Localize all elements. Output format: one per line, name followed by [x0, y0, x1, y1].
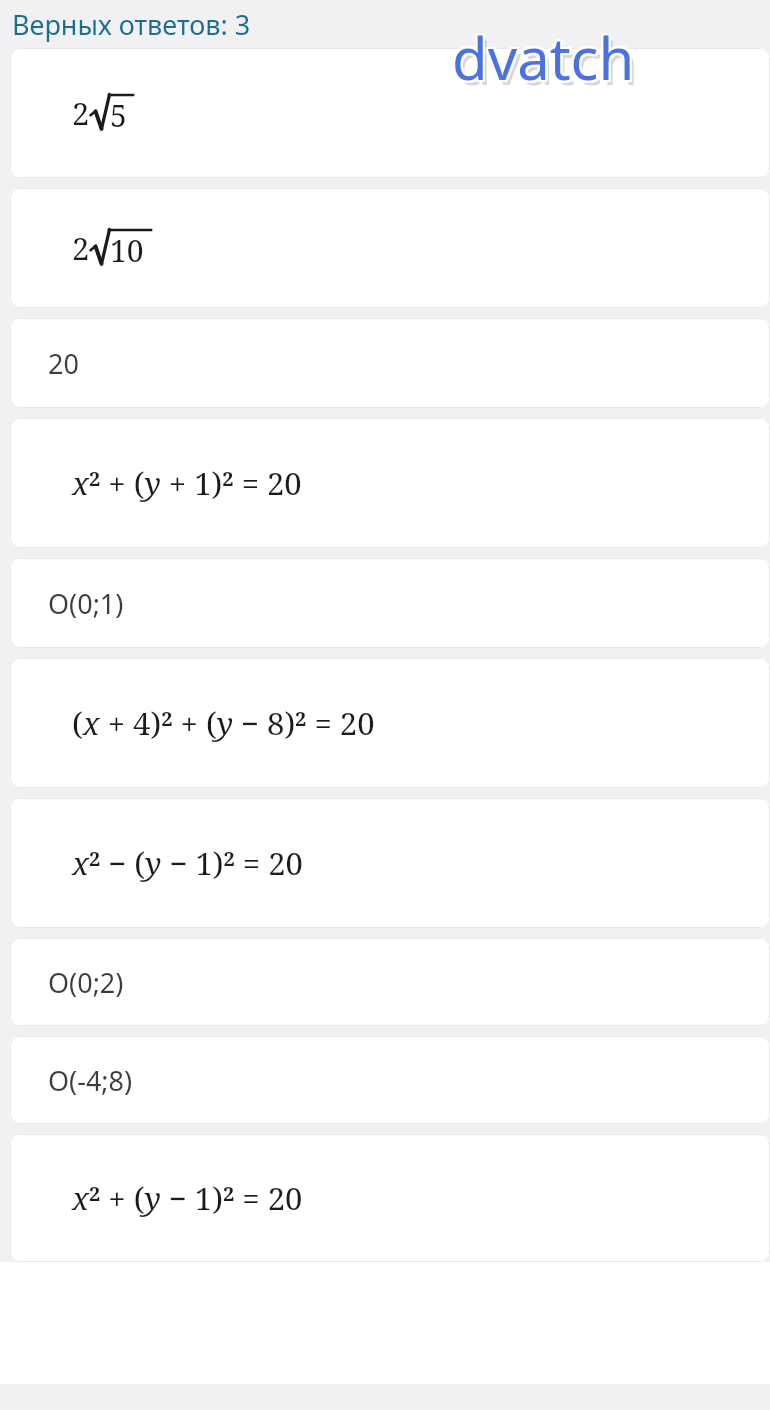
button[interactable]: x2 − (y − 1)2 = 20 [10, 798, 770, 928]
staticText: 20 [48, 345, 79, 382]
staticText: dvatch [450, 18, 633, 97]
staticText: 2 [72, 227, 90, 269]
staticText: Верных ответов: 3 [12, 6, 251, 43]
staticText: 5 [110, 95, 127, 135]
staticText: dvatch [452, 18, 635, 97]
staticText: O(0;2) [48, 964, 124, 1001]
staticText: dvatch [454, 20, 637, 99]
staticText: O(0;1) [48, 585, 124, 622]
staticText: dvatch [454, 18, 637, 97]
staticText: 10 [110, 230, 144, 270]
button[interactable]: x2 + (y − 1)2 = 20 [10, 1134, 770, 1262]
staticText: O(-4;8) [48, 1062, 133, 1099]
button[interactable]: 20 [10, 318, 770, 408]
staticText: (x + 4)2 + (y − 8)2 = 20 [72, 702, 375, 744]
button[interactable]: O(0;1) [10, 558, 770, 648]
staticText: dvatch [456, 23, 639, 102]
staticText: dvatch [450, 20, 633, 99]
other: dvatch watermark [452, 18, 635, 97]
staticText: x2 + (y − 1)2 = 20 [72, 1177, 303, 1219]
button[interactable]: O(-4;8) [10, 1036, 770, 1124]
staticText: dvatch [454, 16, 637, 95]
button[interactable]: 2 [10, 188, 770, 308]
button[interactable]: 2 [10, 48, 770, 178]
staticText: x2 + (y + 1)2 = 20 [72, 462, 302, 504]
staticText: x2 − (y − 1)2 = 20 [72, 842, 303, 884]
button[interactable]: (x + 4)2 + (y − 8)2 = 20 [10, 658, 770, 788]
button[interactable]: O(0;2) [10, 938, 770, 1026]
button[interactable]: x2 + (y + 1)2 = 20 [10, 418, 770, 548]
staticText: dvatch [452, 16, 635, 95]
staticText: 2 [72, 92, 90, 134]
staticText: dvatch [450, 16, 633, 95]
staticText: dvatch [452, 20, 635, 99]
